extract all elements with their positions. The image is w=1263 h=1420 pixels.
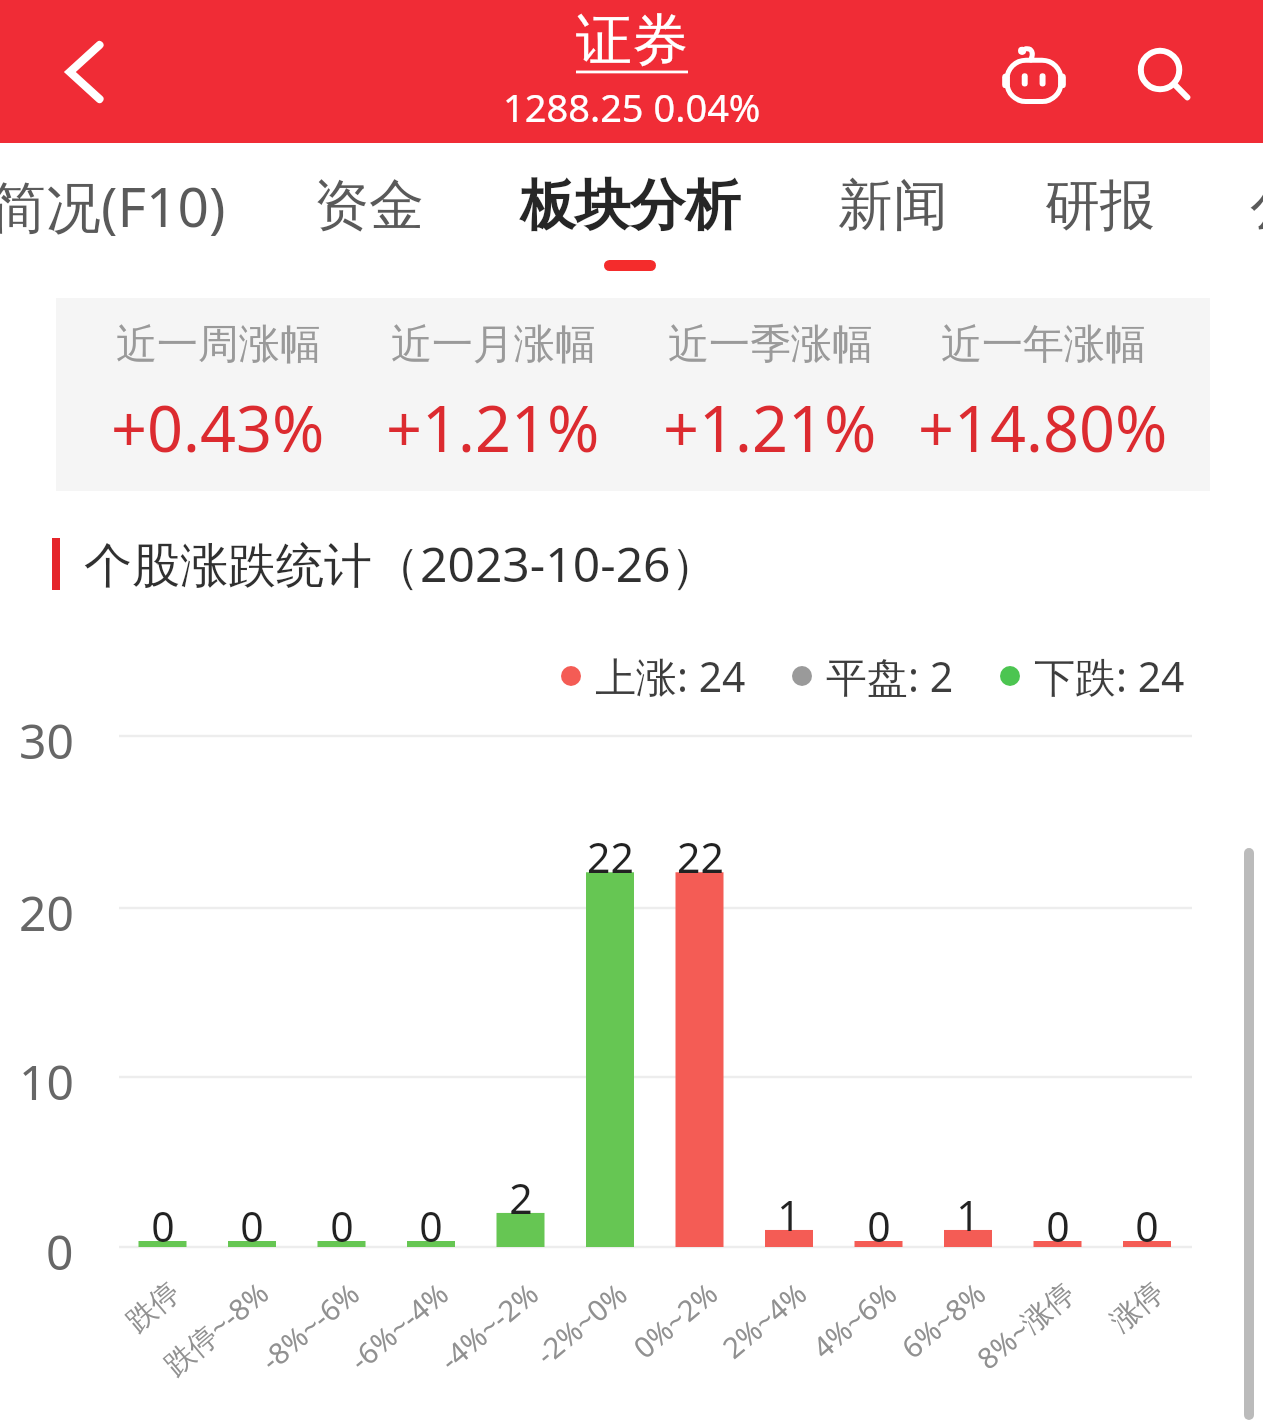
button[interactable]: 上涨: 24 xyxy=(561,648,746,704)
staticText: 0 xyxy=(240,1198,264,1242)
staticText: 近一月涨幅 xyxy=(391,319,596,371)
staticText: 证券 xyxy=(576,5,688,76)
staticText: +1.21% xyxy=(663,385,877,471)
staticText: 新闻 xyxy=(838,171,948,240)
staticText: 简况(F10) xyxy=(0,168,226,243)
staticText: 平盘: 2 xyxy=(826,648,954,704)
staticText: 近一年涨幅 xyxy=(941,319,1146,371)
button[interactable]: 平盘: 2 xyxy=(792,648,954,704)
button[interactable]: 个股涨跌统计（2023-10-26） xyxy=(0,510,1263,618)
staticText: -4%~-2% xyxy=(431,1273,546,1378)
staticText: 0 xyxy=(1046,1198,1070,1242)
staticText: 0 xyxy=(419,1198,443,1242)
staticText: 个股涨跌统计（2023-10-26） xyxy=(84,531,719,597)
staticText: 跌停 xyxy=(119,1274,187,1340)
button[interactable]: 公告 xyxy=(1105,143,1263,298)
staticText: +14.80% xyxy=(918,385,1168,471)
button[interactable]: 近一季涨幅 xyxy=(635,298,905,491)
staticText: 2 xyxy=(509,1170,533,1214)
button[interactable]: 近一月涨幅 xyxy=(358,298,628,491)
staticText: 近一周涨幅 xyxy=(116,319,321,371)
staticText: 10 xyxy=(19,1049,74,1109)
staticText: 资金 xyxy=(314,171,424,240)
staticText: 0 xyxy=(330,1198,354,1242)
staticText: 22 xyxy=(677,829,724,873)
staticText: -6%~-4% xyxy=(341,1273,456,1378)
button[interactable]: Search xyxy=(1115,25,1215,125)
button[interactable]: 资金 xyxy=(169,143,569,298)
button[interactable]: 板块分析 xyxy=(430,143,830,298)
staticText: 研报 xyxy=(1045,171,1155,240)
staticText: 20 xyxy=(19,880,74,940)
staticText: -2%~0% xyxy=(527,1273,635,1373)
staticText: 上涨: 24 xyxy=(595,648,746,704)
staticText: 板块分析 xyxy=(520,171,740,240)
button[interactable]: 近一年涨幅 xyxy=(908,298,1178,491)
staticText: 0 xyxy=(151,1198,175,1242)
staticText: 4%~6% xyxy=(804,1273,904,1366)
button[interactable]: 下跌: 24 xyxy=(1000,648,1185,704)
button[interactable]: Assistant xyxy=(984,25,1084,125)
staticText: 0%~2% xyxy=(625,1273,725,1366)
staticText: 6%~8% xyxy=(893,1273,993,1366)
staticText: +0.43% xyxy=(111,385,325,471)
button[interactable]: 研报 xyxy=(900,143,1263,298)
staticText: 下跌: 24 xyxy=(1034,648,1185,704)
staticText: 1 xyxy=(777,1187,801,1231)
staticText: 22 xyxy=(587,829,634,873)
staticText: 0 xyxy=(46,1219,74,1279)
staticText: 2%~4% xyxy=(714,1273,814,1366)
staticText: 1 xyxy=(956,1187,980,1231)
staticText: 跌停~-8% xyxy=(155,1273,277,1384)
staticText: 0 xyxy=(1135,1198,1159,1242)
staticText: 涨停 xyxy=(1103,1274,1171,1340)
button[interactable]: 近一周涨幅 xyxy=(83,298,353,491)
staticText: 1288.25 0.04% xyxy=(503,81,761,133)
staticText: 30 xyxy=(19,708,74,768)
staticText: 8%~涨停 xyxy=(968,1273,1083,1378)
staticText: -8%~-6% xyxy=(252,1273,367,1378)
button[interactable]: 简况(F10) xyxy=(0,143,308,298)
staticText: 近一季涨幅 xyxy=(668,319,873,371)
staticText: 0 xyxy=(867,1198,891,1242)
staticText: 公告 xyxy=(1250,171,1263,240)
button[interactable]: Back xyxy=(40,27,130,117)
button[interactable]: 新闻 xyxy=(693,143,1093,298)
staticText: +1.21% xyxy=(386,385,600,471)
